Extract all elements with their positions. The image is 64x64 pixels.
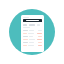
button[interactable] [23, 38, 42, 41]
button[interactable] [23, 32, 42, 35]
button[interactable] [23, 44, 42, 47]
button[interactable] [23, 41, 42, 44]
button[interactable]: Document list app icon [9, 9, 55, 55]
button[interactable] [23, 35, 42, 38]
button[interactable] [23, 19, 42, 22]
button[interactable] [23, 29, 42, 32]
